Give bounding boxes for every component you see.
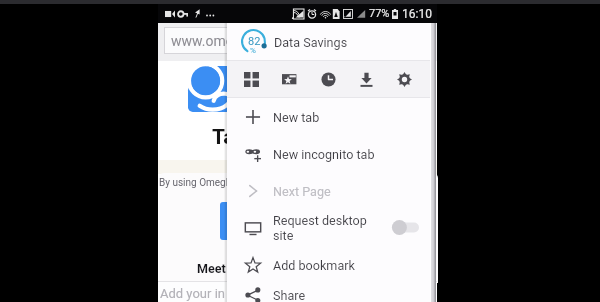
button[interactable]: Next Page — [227, 172, 436, 209]
button[interactable]: Downloads — [352, 61, 380, 97]
button[interactable]: New incognito tab — [227, 135, 436, 172]
staticText: Ta — [212, 125, 235, 150]
staticText: 77% — [369, 7, 390, 20]
staticText: Share — [273, 288, 306, 302]
staticText: 82 — [248, 35, 261, 48]
button[interactable]: Share — [227, 283, 436, 302]
staticText: Add bookmark — [273, 258, 355, 273]
button[interactable]: Add bookmark — [227, 246, 436, 283]
button[interactable]: New tab — [227, 98, 436, 135]
staticText: Request desktop site — [273, 213, 367, 243]
button[interactable]: History — [314, 61, 342, 97]
button[interactable]: Settings — [390, 61, 418, 97]
staticText: % — [250, 46, 256, 55]
staticText: New tab — [273, 110, 320, 125]
staticText: Add your in — [160, 286, 225, 301]
staticText: Next Page — [273, 184, 331, 199]
button[interactable]: 82 — [227, 23, 436, 60]
staticText: 16:10 — [402, 7, 432, 21]
staticText: Meet — [197, 261, 226, 276]
staticText: www.omeg — [171, 33, 241, 49]
button[interactable]: Request desktop site — [227, 209, 436, 246]
staticText: By using Omegle, — [159, 177, 236, 189]
button[interactable]: Tabs — [237, 61, 265, 97]
staticText: New incognito tab — [273, 147, 375, 162]
staticText: Data Savings — [274, 35, 348, 50]
button[interactable]: Bookmarks — [275, 61, 303, 97]
